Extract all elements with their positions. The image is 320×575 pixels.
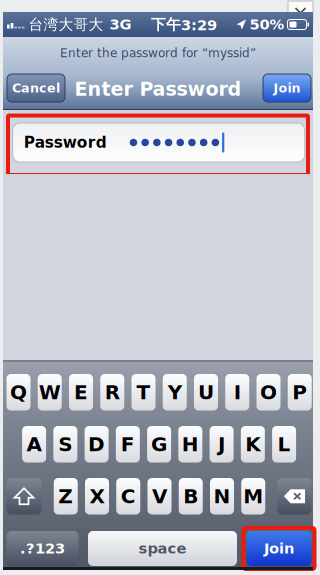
staticText: 下午3:29: [151, 15, 217, 34]
button[interactable]: C: [116, 478, 140, 514]
staticText: R: [105, 381, 120, 404]
staticText: Enter Password: [74, 78, 241, 100]
staticText: space: [138, 540, 186, 557]
staticText: E: [74, 381, 88, 404]
staticText: O: [260, 381, 277, 404]
staticText: W: [39, 381, 61, 404]
button[interactable]: E: [69, 374, 93, 410]
staticText: J: [218, 433, 225, 456]
button[interactable]: S: [53, 426, 77, 462]
staticText: Join: [264, 540, 294, 557]
staticText: L: [278, 433, 291, 456]
staticText: Join: [273, 81, 300, 95]
button[interactable]: N: [210, 478, 234, 514]
button[interactable]: Y: [163, 374, 187, 410]
staticText: H: [182, 433, 199, 456]
button[interactable]: M: [241, 478, 265, 514]
button[interactable]: L: [272, 426, 296, 462]
staticText: Z: [58, 485, 73, 508]
button[interactable]: Q: [6, 374, 30, 410]
button[interactable]: V: [147, 478, 171, 514]
staticText: V: [152, 485, 167, 508]
button[interactable]: O: [256, 374, 280, 410]
button[interactable]: Shift: [6, 478, 41, 514]
staticText: U: [198, 381, 214, 404]
button[interactable]: Z: [54, 478, 78, 514]
staticText: Enter the password for “myssid”: [60, 46, 256, 60]
staticText: S: [58, 433, 72, 456]
staticText: K: [245, 433, 260, 456]
staticText: N: [213, 485, 230, 508]
staticText: X: [89, 485, 104, 508]
staticText: 台湾大哥大: [28, 15, 103, 34]
button[interactable]: A: [22, 426, 46, 462]
button[interactable]: J: [210, 426, 234, 462]
staticText: Cancel: [12, 81, 60, 95]
button[interactable]: X: [85, 478, 109, 514]
staticText: .?123: [20, 540, 65, 557]
button[interactable]: Close: [288, 1, 313, 25]
staticText: Password: [24, 134, 107, 151]
button[interactable]: K: [241, 426, 265, 462]
button[interactable]: Join: [263, 74, 311, 102]
staticText: I: [234, 381, 241, 404]
staticText: 3G: [109, 16, 131, 33]
staticText: M: [243, 485, 263, 508]
staticText: C: [121, 485, 136, 508]
staticText: T: [136, 381, 150, 404]
button[interactable]: D: [85, 426, 109, 462]
button[interactable]: P: [288, 374, 312, 410]
button[interactable]: G: [147, 426, 171, 462]
button[interactable]: .?123: [6, 531, 78, 566]
staticText: G: [151, 433, 167, 456]
button[interactable]: T: [131, 374, 155, 410]
staticText: F: [121, 433, 135, 456]
button[interactable]: Cancel: [7, 74, 65, 102]
button[interactable]: space: [88, 531, 237, 566]
staticText: B: [183, 485, 198, 508]
button[interactable]: B: [179, 478, 203, 514]
button[interactable]: U: [194, 374, 218, 410]
staticText: A: [27, 433, 42, 456]
staticText: P: [292, 381, 307, 404]
button[interactable]: R: [100, 374, 124, 410]
button[interactable]: Delete: [277, 478, 311, 514]
staticText: Q: [10, 381, 27, 404]
staticText: D: [88, 433, 105, 456]
button[interactable]: F: [116, 426, 140, 462]
staticText: 50%: [249, 16, 284, 33]
button[interactable]: H: [178, 426, 202, 462]
button[interactable]: W: [38, 374, 62, 410]
staticText: Y: [168, 381, 182, 404]
button[interactable]: Join: [246, 531, 311, 566]
button[interactable]: I: [225, 374, 249, 410]
